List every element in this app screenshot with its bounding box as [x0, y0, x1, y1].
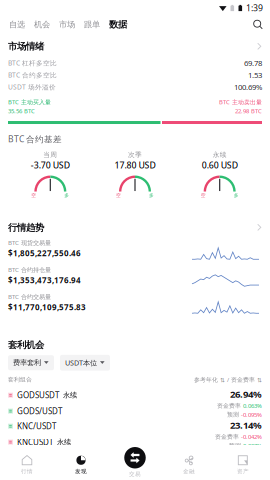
button[interactable]: 行情趋势: [8, 221, 262, 234]
button[interactable]: 金融: [162, 448, 216, 475]
button[interactable]: KNC/USDT: [8, 419, 262, 450]
staticText: BTC 合约多空比: [8, 70, 57, 79]
staticText: 自选: [9, 19, 25, 30]
staticText: 1.53: [248, 70, 262, 80]
staticText: BTC 合约交易量: [8, 292, 51, 301]
button[interactable]: 交易: [108, 445, 162, 478]
staticText: 行情趋势: [8, 222, 44, 233]
staticText: 资金费率: [217, 402, 241, 409]
staticText: 市场情绪: [8, 41, 44, 52]
staticText: 费率套利: [13, 358, 41, 367]
button[interactable]: 行情: [0, 448, 54, 475]
button[interactable]: 跟单: [80, 16, 104, 33]
staticText: KNC/USDT: [17, 421, 56, 432]
button[interactable]: 自选: [5, 16, 29, 33]
staticText: 17.80 USD: [114, 159, 155, 171]
staticText: 参考年化 ⇅ / 资金费率 ⇅: [194, 376, 262, 384]
staticText: 行情: [21, 468, 33, 475]
staticText: 多: [149, 192, 154, 198]
staticText: 当周: [43, 151, 57, 159]
staticText: -0.042%: [241, 433, 262, 441]
staticText: -0.095%: [241, 411, 262, 419]
staticText: $11,770,109,575.83: [8, 302, 86, 313]
staticText: -3.70 USD: [31, 159, 70, 171]
staticText: $1,805,227,550.46: [8, 248, 81, 259]
staticText: 金融: [183, 468, 195, 475]
staticText: 发现: [75, 468, 87, 475]
staticText: 22.98 BTC: [235, 107, 262, 115]
button[interactable]: BTC 合约持仓量: [8, 262, 262, 289]
staticText: GODSUSDT: [17, 390, 59, 401]
staticText: 100.69%: [234, 82, 262, 92]
staticText: 空: [201, 192, 206, 198]
staticText: KNCUSDT: [17, 437, 53, 447]
staticText: 跟单: [84, 19, 100, 30]
staticText: 次季: [128, 151, 142, 159]
staticText: 空: [116, 192, 121, 198]
button[interactable]: 市场: [55, 16, 79, 33]
staticText: 1:39: [246, 2, 263, 14]
button[interactable]: USDT本位: [60, 355, 110, 371]
staticText: BTC 主动买入量: [8, 98, 51, 106]
button[interactable]: GODSUSDT: [8, 388, 262, 419]
staticText: 套利组合: [8, 376, 32, 383]
staticText: 数据: [109, 19, 127, 30]
staticText: $1,353,473,176.94: [8, 275, 81, 286]
button[interactable]: BTC 合约交易量: [8, 289, 262, 316]
button[interactable]: 搜索: [250, 16, 266, 32]
staticText: USDT本位: [65, 358, 97, 368]
staticText: GODS/USDT: [17, 406, 62, 416]
staticText: 市场: [59, 19, 75, 30]
staticText: 26.94%: [230, 388, 262, 401]
staticText: BTC 杠杆多空比: [8, 58, 57, 67]
staticText: 多: [234, 192, 239, 198]
staticText: 0.063%: [243, 402, 262, 410]
button[interactable]: BTC 现货交易量: [8, 235, 262, 262]
button[interactable]: 发现: [54, 448, 108, 475]
staticText: 交易: [129, 470, 141, 478]
staticText: 永续: [213, 151, 227, 159]
staticText: 套利机会: [8, 339, 44, 351]
staticText: BTC 现货交易量: [8, 238, 51, 247]
button[interactable]: 机会: [30, 16, 54, 33]
staticText: 23.14%: [230, 419, 262, 432]
staticText: 预测: [229, 442, 241, 449]
staticText: 永续: [63, 391, 77, 400]
staticText: 0.60 USD: [202, 159, 238, 171]
staticText: 0.007%: [243, 442, 262, 450]
staticText: 资金费率: [215, 433, 239, 440]
staticText: 资产: [237, 468, 249, 475]
button[interactable]: 数据: [105, 16, 131, 33]
staticText: BTC 合约持仓量: [8, 265, 51, 274]
staticText: 预测: [227, 411, 239, 418]
staticText: 空: [31, 192, 36, 198]
staticText: USDT 场外溢价: [8, 82, 56, 91]
button[interactable]: 市场情绪: [8, 40, 262, 53]
staticText: 永续: [57, 437, 71, 447]
staticText: 69.78: [244, 58, 262, 68]
staticText: 多: [64, 192, 69, 198]
button[interactable]: 资产: [216, 448, 270, 475]
staticText: BTC 主动卖出量: [219, 98, 262, 106]
staticText: 35.56 BTC: [8, 107, 35, 115]
button[interactable]: 费率套利: [8, 355, 54, 370]
staticText: BTC 合约基差: [8, 133, 62, 145]
staticText: 机会: [34, 19, 50, 30]
